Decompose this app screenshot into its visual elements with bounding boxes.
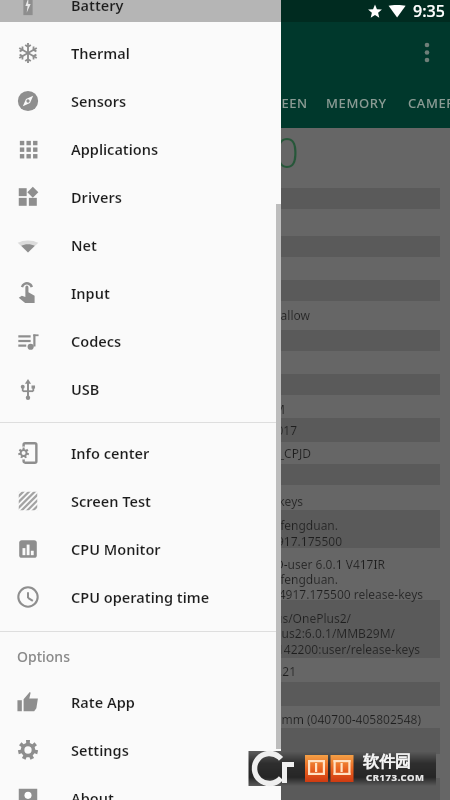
staticText: 4917.175500 release-keys	[123, 586, 423, 602]
staticText: Qualcomm (040700-405802548)	[121, 711, 421, 727]
staticText: 软件园	[363, 752, 411, 772]
staticText: Codecs	[71, 331, 122, 351]
button[interactable]: Drivers	[0, 173, 281, 221]
staticText: Sensors	[71, 91, 127, 111]
staticText: ONEPLUS A2001_CPJD-user 6.0.1 V417IR	[85, 556, 385, 572]
staticText: Android 6.0.1 Marshmallow	[10, 307, 310, 323]
staticText: 2017 fengduan.	[38, 571, 338, 587]
staticText: Rate App	[71, 692, 135, 712]
staticText: SCREEN	[256, 94, 308, 112]
staticText: Options	[17, 647, 70, 666]
staticText: 2016.11.21	[0, 663, 296, 679]
staticText: Info center	[71, 443, 150, 463]
staticText: 4917.175500	[42, 533, 342, 549]
button[interactable]: USB	[0, 365, 281, 413]
staticText: OnePlus2:6.0.1/MMB29M/	[95, 625, 395, 641]
button[interactable]: Rate App	[0, 678, 281, 726]
staticText: Drivers	[71, 187, 122, 207]
staticText: Settings	[71, 740, 129, 760]
staticText: Screen Test	[71, 491, 151, 511]
button[interactable]: About	[0, 774, 281, 800]
staticText: Thermal	[71, 43, 130, 63]
button[interactable]: Thermal	[0, 29, 281, 77]
staticText: 9:35	[413, 0, 445, 22]
staticText: ONEPLUS A2001_CPJD	[11, 445, 311, 461]
button[interactable]: CPU Monitor	[0, 525, 281, 573]
staticText: 100	[227, 123, 299, 180]
button[interactable]: Battery	[0, 0, 281, 29]
staticText: user/fengduan.	[38, 517, 338, 533]
button[interactable]: Sensors	[0, 77, 281, 125]
button[interactable]: Codecs	[0, 317, 281, 365]
staticText: Input	[71, 283, 110, 303]
staticText: CPU Monitor	[71, 539, 161, 559]
staticText: 1611142200:user/release-keys	[120, 641, 420, 657]
staticText: V417IR2017	[0, 422, 297, 438]
staticText: CR173.COM	[366, 771, 425, 784]
button[interactable]: Info center	[0, 429, 281, 477]
button[interactable]: Screen Test	[0, 477, 281, 525]
staticText: CAMERA	[408, 94, 450, 112]
button[interactable]: Input	[0, 269, 281, 317]
staticText: USB	[71, 379, 100, 399]
button[interactable]: CPU operating time	[0, 573, 281, 621]
button[interactable]: Net	[0, 221, 281, 269]
staticText: release-keys	[3, 493, 303, 509]
staticText: About	[71, 788, 114, 800]
button[interactable]: Settings	[0, 726, 281, 774]
staticText: Applications	[71, 139, 159, 159]
staticText: CPU operating time	[71, 587, 210, 607]
staticText: Net	[71, 235, 97, 255]
staticText: MEMORY	[326, 94, 387, 112]
staticText: OnePlus/OnePlus2/	[51, 610, 351, 626]
staticText: Battery	[71, 0, 124, 15]
staticText: MMB29M	[0, 401, 285, 417]
button[interactable]: Applications	[0, 125, 281, 173]
